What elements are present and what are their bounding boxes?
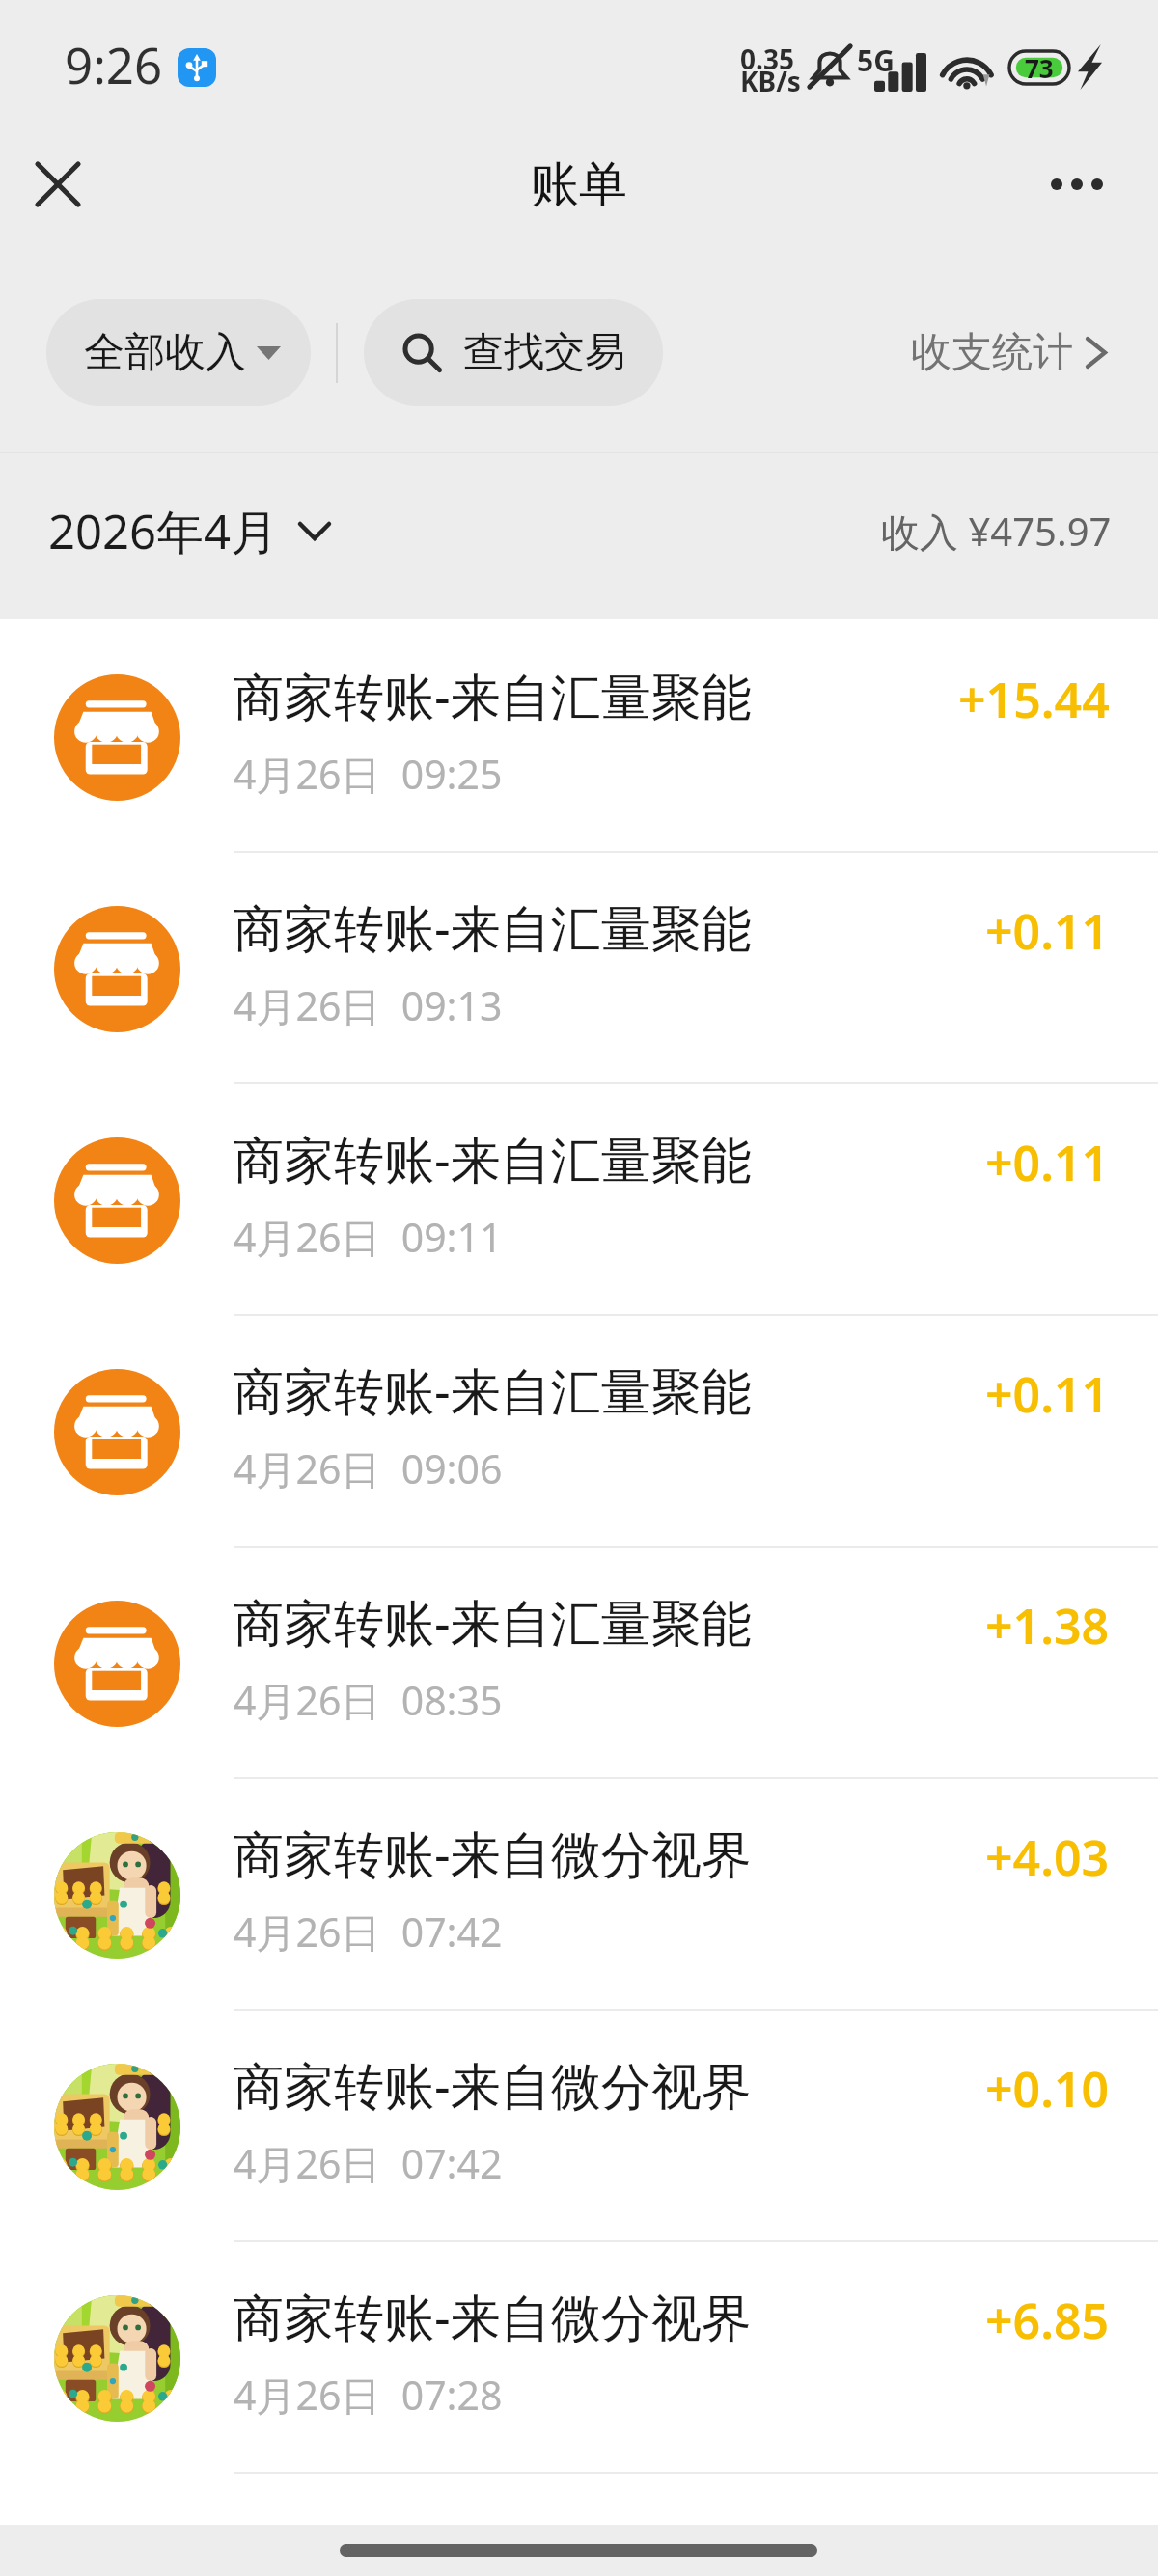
staticText: 商家转账-来自微分视界: [234, 2282, 752, 2350]
staticText: 5G: [857, 41, 895, 80]
button[interactable]: 商家转账-来自汇量聚能: [0, 1316, 1158, 1548]
staticText: 0.35: [740, 41, 794, 77]
staticText: 账单: [531, 154, 627, 215]
staticText: 73: [1025, 51, 1054, 84]
staticText: 商家转账-来自微分视界: [234, 2050, 752, 2119]
staticText: 2026年4月: [48, 499, 279, 563]
button[interactable]: 商家转账-来自微分视界: [0, 2242, 1158, 2474]
staticText: 商家转账-来自汇量聚能: [234, 1356, 752, 1424]
staticText: +0.10: [985, 2056, 1110, 2122]
button[interactable]: 商家转账-来自微分视界: [0, 1779, 1158, 2011]
button[interactable]: 全部收入: [46, 299, 311, 406]
staticText: 商家转账-来自微分视界: [234, 1819, 752, 1887]
staticText: 商家转账-来自汇量聚能: [234, 661, 752, 729]
button[interactable]: 收支统计: [911, 327, 1107, 378]
staticText: 9:26: [65, 31, 163, 97]
staticText: 4月26日 07:42: [234, 1905, 503, 1959]
staticText: 商家转账-来自汇量聚能: [234, 1587, 752, 1656]
staticText: 查找交易: [463, 327, 625, 378]
staticText: 4月26日 09:13: [234, 978, 503, 1032]
staticText: 4月26日 09:06: [234, 1441, 503, 1495]
button[interactable]: 商家转账-来自汇量聚能: [0, 1084, 1158, 1316]
staticText: 4月26日 08:35: [234, 1673, 503, 1727]
staticText: +0.11: [985, 1130, 1110, 1195]
staticText: +4.03: [985, 1824, 1110, 1890]
button[interactable]: More options: [1034, 146, 1120, 223]
staticText: +0.11: [985, 898, 1110, 964]
staticText: 收入 ¥475.97: [881, 505, 1112, 558]
staticText: 4月26日 07:28: [234, 2368, 503, 2422]
staticText: +1.38: [985, 1593, 1110, 1658]
staticText: +15.44: [958, 667, 1110, 732]
button[interactable]: 查找交易: [364, 299, 663, 406]
button[interactable]: 商家转账-来自汇量聚能: [0, 621, 1158, 853]
staticText: KB/s: [740, 63, 801, 99]
button[interactable]: 商家转账-来自微分视界: [0, 2011, 1158, 2242]
staticText: +6.85: [985, 2288, 1110, 2353]
staticText: 商家转账-来自汇量聚能: [234, 892, 752, 961]
staticText: 全部收入: [84, 327, 246, 378]
button[interactable]: Close: [15, 142, 100, 227]
button[interactable]: 商家转账-来自汇量聚能: [0, 1548, 1158, 1779]
staticText: 4月26日 09:11: [234, 1210, 503, 1264]
staticText: 4月26日 09:25: [234, 747, 503, 801]
staticText: 收支统计: [911, 327, 1073, 378]
staticText: +0.11: [985, 1361, 1110, 1427]
staticText: 商家转账-来自汇量聚能: [234, 1124, 752, 1192]
staticText: 4月26日 07:42: [234, 2136, 503, 2190]
button[interactable]: 商家转账-来自汇量聚能: [0, 853, 1158, 1084]
button[interactable]: 2026年4月: [48, 499, 331, 563]
